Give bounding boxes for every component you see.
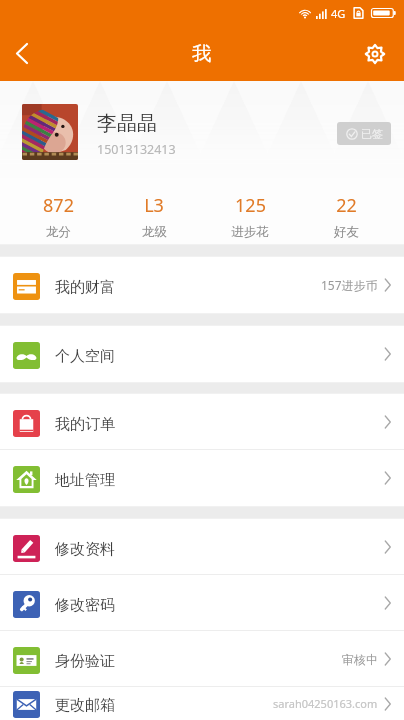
staticText: sarah04250163.com [273,696,378,711]
button[interactable]: Back [0,26,46,81]
button[interactable]: 修改密码 [0,575,404,631]
staticText: 我的财富 [55,278,115,297]
staticText: 我 [192,41,212,66]
button[interactable]: 地址管理 [0,450,404,506]
staticText: 进步花 [231,224,269,240]
staticText: 157进步币 [321,277,378,293]
button[interactable]: 更改邮箱 [0,687,404,720]
staticText: 身份验证 [55,652,115,671]
button[interactable]: L3 [106,178,202,244]
staticText: 修改密码 [55,596,115,615]
staticText: 龙分 [46,224,71,240]
button[interactable]: 872 [10,178,106,244]
staticText: 15013132413 [97,141,176,158]
button[interactable]: Settings [352,26,404,81]
button[interactable]: 个人空间 [0,326,404,382]
staticText: 更改邮箱 [55,696,115,715]
staticText: 修改资料 [55,540,115,559]
staticText: 872 [43,193,74,218]
button[interactable]: 已签 [337,122,391,145]
button[interactable]: Avatar [22,104,78,160]
button[interactable]: 我的订单 [0,394,404,450]
staticText: 地址管理 [55,471,115,490]
staticText: 22 [336,193,357,218]
staticText: 125 [235,193,266,218]
staticText: L3 [144,193,164,218]
staticText: 4G [331,6,346,21]
button[interactable]: 125 [202,178,298,244]
staticText: 我的订单 [55,415,115,434]
button[interactable]: 22 [298,178,394,244]
staticText: 已签 [361,127,383,141]
staticText: 个人空间 [55,347,115,366]
staticText: 好友 [334,224,359,240]
staticText: 审核中 [342,652,378,667]
staticText: 龙级 [142,224,167,240]
button[interactable]: 我的财富 [0,257,404,313]
button[interactable]: 修改资料 [0,519,404,575]
staticText: 李晶晶 [97,111,157,136]
button[interactable]: 身份验证 [0,631,404,687]
